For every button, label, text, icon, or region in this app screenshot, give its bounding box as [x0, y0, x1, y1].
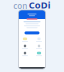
- button[interactable]: Feature: [34, 37, 43, 42]
- button[interactable]: Feature: [20, 37, 29, 42]
- button[interactable]: Feature: [34, 44, 43, 49]
- staticText: CoDi: [29, 0, 51, 11]
- button[interactable]: Feature: [34, 52, 43, 56]
- button[interactable]: Feature: [20, 52, 29, 56]
- staticText: con: [13, 1, 27, 11]
- button[interactable]: Feature: [20, 44, 29, 49]
- button[interactable]: [24, 31, 39, 34]
